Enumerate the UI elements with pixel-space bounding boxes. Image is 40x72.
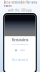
- staticText: Set a reminder for any event: [3, 1, 36, 8]
- staticText: with the iOS app: [8, 9, 32, 12]
- staticText: Reminders: [12, 38, 28, 42]
- staticText: Get started: [12, 58, 28, 62]
- staticText: Never miss a thing again: [12, 43, 28, 45]
